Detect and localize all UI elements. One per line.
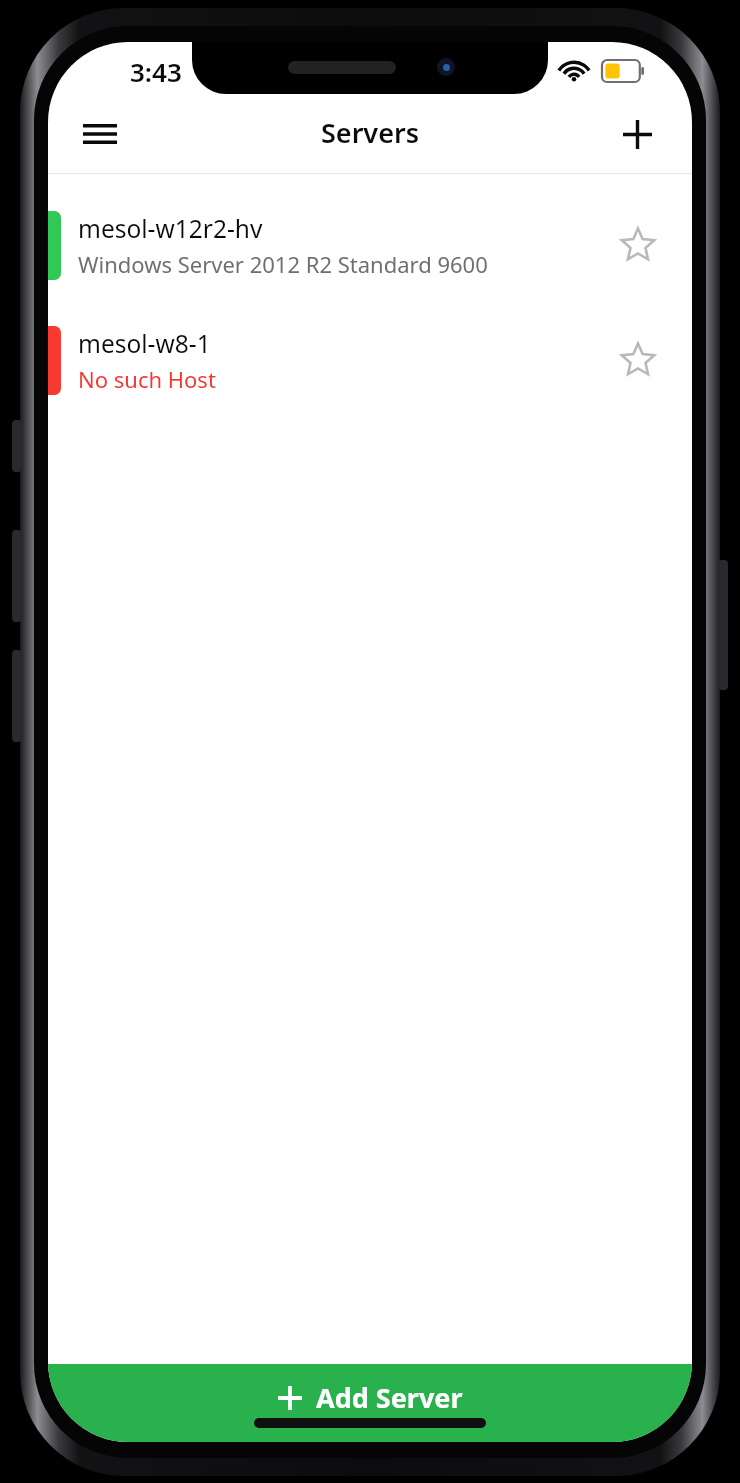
staticText: mesol-w8-1 (78, 327, 211, 360)
button[interactable]: Favorite (610, 217, 666, 273)
staticText: Windows Server 2012 R2 Standard 9600 (78, 249, 488, 279)
button[interactable]: mesol-w8-1 (48, 325, 692, 395)
staticText: Servers (321, 114, 419, 151)
button[interactable]: Favorite (610, 332, 666, 388)
staticText: No such Host (78, 364, 216, 394)
staticText: mesol-w12r2-hv (78, 212, 263, 245)
button[interactable]: Menu (70, 104, 130, 164)
button[interactable]: Add (608, 105, 666, 163)
staticText: 3:43 (130, 54, 182, 89)
button[interactable]: mesol-w12r2-hv (48, 210, 692, 280)
button[interactable]: Add Server (48, 1364, 692, 1442)
staticText: Add Server (316, 1379, 463, 1416)
